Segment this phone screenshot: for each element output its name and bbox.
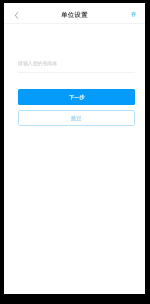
button[interactable]: 下一步 xyxy=(18,89,135,105)
staticText: 单位设置 xyxy=(61,11,88,19)
button[interactable]: Save xyxy=(127,3,141,23)
button[interactable]: 跳过 xyxy=(18,110,135,126)
staticText: 跳过 xyxy=(71,115,82,122)
staticText: 下一步 xyxy=(69,94,85,101)
staticText: 请输入您的身高体 xyxy=(18,60,58,66)
staticText: 存 xyxy=(131,11,137,18)
button[interactable]: Back xyxy=(4,3,26,23)
